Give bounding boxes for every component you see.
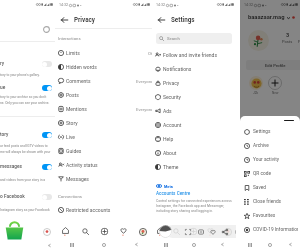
button[interactable]: Theme	[152, 160, 236, 174]
button[interactable]: Limits	[55, 46, 152, 60]
button[interactable]: Edit Profile	[246, 60, 300, 70]
button[interactable]: Back	[156, 15, 166, 25]
staticText: Connections	[58, 194, 83, 199]
staticText: J2k	[253, 91, 259, 95]
button[interactable]: messages	[0, 163, 55, 171]
button[interactable]: QR code	[240, 167, 300, 181]
button[interactable]: Your activity	[240, 153, 300, 167]
button[interactable]: Search	[168, 224, 185, 239]
button[interactable]: Favourite	[208, 227, 217, 236]
staticText: Off	[148, 51, 154, 56]
button[interactable]: COVID-19 Information C	[240, 223, 300, 237]
staticText: Mentions	[66, 106, 87, 112]
button[interactable]: Story	[55, 116, 152, 130]
staticText: and videos from your story in a	[0, 178, 46, 182]
button[interactable]: Mentions	[55, 102, 152, 116]
button[interactable]: Activity	[202, 224, 219, 239]
button[interactable]: Home	[152, 224, 168, 239]
staticText: tory to your phone's gallery.	[0, 73, 40, 77]
button[interactable]: Privacy	[152, 76, 236, 90]
button[interactable]: Search	[75, 224, 95, 239]
button[interactable]: tory	[0, 131, 55, 139]
staticText: 3	[286, 32, 290, 39]
staticText: Everyone	[136, 107, 154, 112]
button[interactable]: More	[233, 227, 242, 236]
staticText: Close friends	[253, 199, 282, 205]
button[interactable]: Favourites	[240, 209, 300, 223]
staticText: ue	[0, 85, 6, 91]
button[interactable]: Back	[59, 15, 69, 25]
staticText: Comments	[66, 78, 91, 84]
button[interactable]: Profile	[219, 224, 236, 239]
staticText: Archive	[253, 143, 269, 149]
button[interactable]: Home	[55, 224, 75, 239]
button[interactable]: Accounts Centre	[156, 191, 191, 196]
button[interactable]: Create	[185, 224, 202, 239]
staticText: Messages	[66, 176, 89, 182]
staticText: Saved	[253, 185, 266, 191]
staticText: Settings	[171, 16, 195, 23]
staticText: me will always be shown with your	[0, 150, 51, 154]
staticText: Help	[163, 136, 174, 142]
staticText: Account	[163, 122, 182, 128]
staticText: Everyone	[136, 79, 154, 84]
staticText: Instagram story as your Facebook	[0, 208, 50, 212]
staticText: ne. Only you can see your archive.	[0, 101, 50, 105]
staticText: Restricted accounts	[66, 207, 111, 213]
button[interactable]: ue	[0, 84, 55, 92]
staticText: Story	[66, 120, 78, 126]
button[interactable]: Activity	[114, 224, 133, 239]
button[interactable]: Follow and invite friends	[152, 48, 236, 62]
button[interactable]: Activity status	[55, 158, 152, 172]
staticText: Interactions	[58, 36, 81, 41]
staticText: Live	[66, 134, 75, 140]
staticText: ur feed posts and IGTV videos to	[0, 144, 48, 148]
staticText: Follow and invite friends	[163, 52, 217, 58]
staticText: Control settings for connected experienc…	[156, 199, 234, 213]
staticText: Posts	[282, 39, 293, 44]
staticText: New	[272, 91, 279, 95]
staticText: Favourites	[253, 213, 276, 219]
button[interactable]: Search	[156, 33, 232, 44]
staticText: Ads	[163, 108, 172, 114]
button[interactable]: Profile	[133, 224, 152, 239]
button[interactable]: Settings	[240, 125, 300, 139]
staticText: ry	[0, 61, 5, 67]
button[interactable]: Share	[220, 227, 229, 236]
button[interactable]: Close friends	[240, 195, 300, 209]
button[interactable]: Create	[95, 224, 114, 239]
button[interactable]: o Facebook	[0, 193, 55, 201]
staticText: messages	[0, 164, 23, 170]
staticText: Limits	[66, 50, 80, 56]
button[interactable]: Posts	[55, 88, 152, 102]
staticText: baaazaar.mag	[248, 14, 285, 21]
staticText: Theme	[163, 164, 179, 170]
button[interactable]: Guides	[55, 144, 152, 158]
button[interactable]: About	[152, 146, 236, 160]
staticText: Notifications	[163, 66, 192, 72]
staticText: Your activity	[253, 157, 280, 163]
button[interactable]: Hidden words	[55, 60, 152, 74]
button[interactable]: Archive	[240, 139, 300, 153]
staticText: o Facebook	[0, 194, 25, 200]
staticText: COVID-19 Information C	[253, 227, 298, 233]
staticText: 14:32	[156, 3, 165, 7]
button[interactable]: Ads	[152, 104, 236, 118]
button[interactable]: Saved	[240, 181, 300, 195]
staticText: tory	[0, 132, 9, 138]
staticText: 14:32	[59, 3, 68, 7]
button[interactable]: Markup	[196, 227, 205, 236]
button[interactable]: Restricted accounts	[55, 203, 152, 217]
button[interactable]: Security	[152, 90, 236, 104]
button[interactable]: Notifications	[152, 62, 236, 76]
staticText: Security	[163, 94, 181, 100]
button[interactable]: Crop	[183, 227, 192, 236]
staticText: Privacy	[74, 16, 95, 23]
button[interactable]: Messages	[55, 172, 152, 186]
button[interactable]: Help	[152, 132, 236, 146]
button[interactable]: Account	[152, 118, 236, 132]
button[interactable]: Comments	[55, 74, 152, 88]
button[interactable]: ry	[0, 60, 55, 68]
staticText: Guides	[66, 148, 82, 154]
button[interactable]: Live	[55, 130, 152, 144]
